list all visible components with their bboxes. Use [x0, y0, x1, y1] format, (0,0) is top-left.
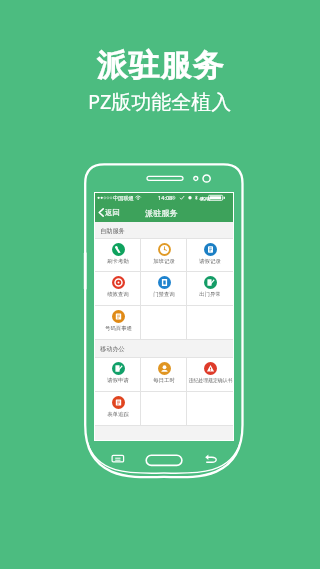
- button[interactable]: [141, 306, 187, 339]
- button[interactable]: 加班记录: [141, 239, 187, 271]
- staticText: 出门异常: [199, 291, 221, 298]
- button[interactable]: 绩效查询: [95, 272, 141, 305]
- staticText: 违纪处理规定确认书: [188, 377, 233, 383]
- staticText: 门禁查询: [153, 291, 175, 298]
- staticText: 表单追踪: [107, 411, 129, 418]
- staticText: PZ版功能全植入: [88, 88, 232, 115]
- staticText: 派驻服务: [145, 208, 178, 218]
- button[interactable]: 号码百事通: [95, 306, 141, 339]
- staticText: 派驻服务: [96, 46, 224, 85]
- button[interactable]: 出门异常: [187, 272, 233, 305]
- staticText: 请假申请: [107, 377, 129, 384]
- button[interactable]: 请假申请: [95, 358, 141, 391]
- button[interactable]: 每日工时: [141, 358, 187, 391]
- staticText: 每日工时: [153, 377, 175, 384]
- button[interactable]: 请假记录: [187, 239, 233, 271]
- button[interactable]: 刷卡考勤: [95, 239, 141, 271]
- button[interactable]: 表单追踪: [95, 392, 141, 425]
- staticText: 自助服务: [100, 227, 125, 235]
- button[interactable]: 违纪处理规定确认书: [187, 358, 233, 391]
- button[interactable]: 返回: [98, 203, 120, 222]
- staticText: 刷卡考勤: [107, 258, 129, 265]
- staticText: 请假记录: [199, 258, 221, 265]
- staticText: 移动办公: [100, 345, 125, 353]
- staticText: 号码百事通: [105, 325, 132, 332]
- staticText: 加班记录: [153, 258, 175, 265]
- staticText: 绩效查询: [107, 291, 129, 298]
- staticText: 14:08: [158, 194, 173, 202]
- staticText: 返回: [105, 208, 120, 217]
- button[interactable]: 门禁查询: [141, 272, 187, 305]
- staticText: 中国联通: [113, 195, 134, 202]
- button[interactable]: [141, 392, 187, 425]
- staticText: 99%: [200, 195, 211, 202]
